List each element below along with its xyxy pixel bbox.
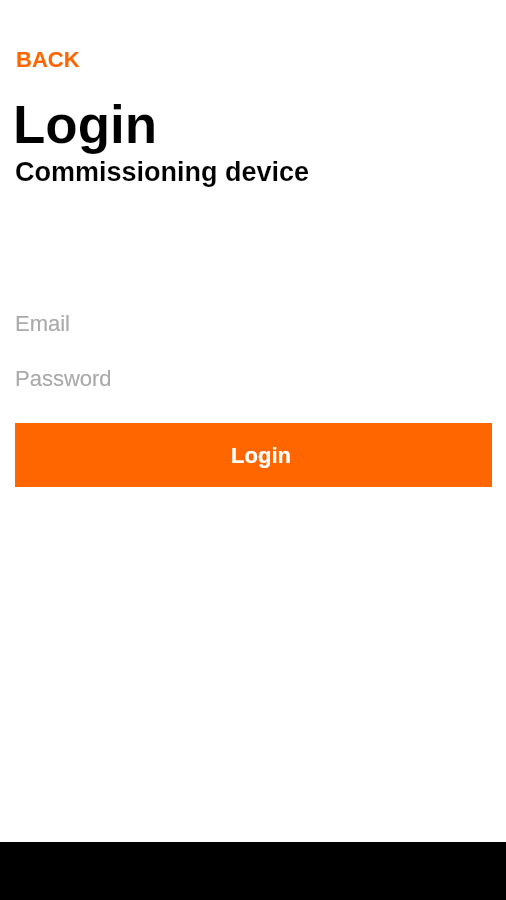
staticText: Login [13,95,158,154]
button[interactable]: Login [15,423,492,487]
button[interactable]: Email [0,301,506,346]
staticText: BACK [16,47,80,72]
staticText: Password [15,366,112,391]
staticText: Email [15,311,71,336]
staticText: Login [231,443,291,468]
button[interactable]: BACK [16,40,80,65]
staticText: Commissioning device [15,157,310,187]
button[interactable]: Password [0,356,506,401]
